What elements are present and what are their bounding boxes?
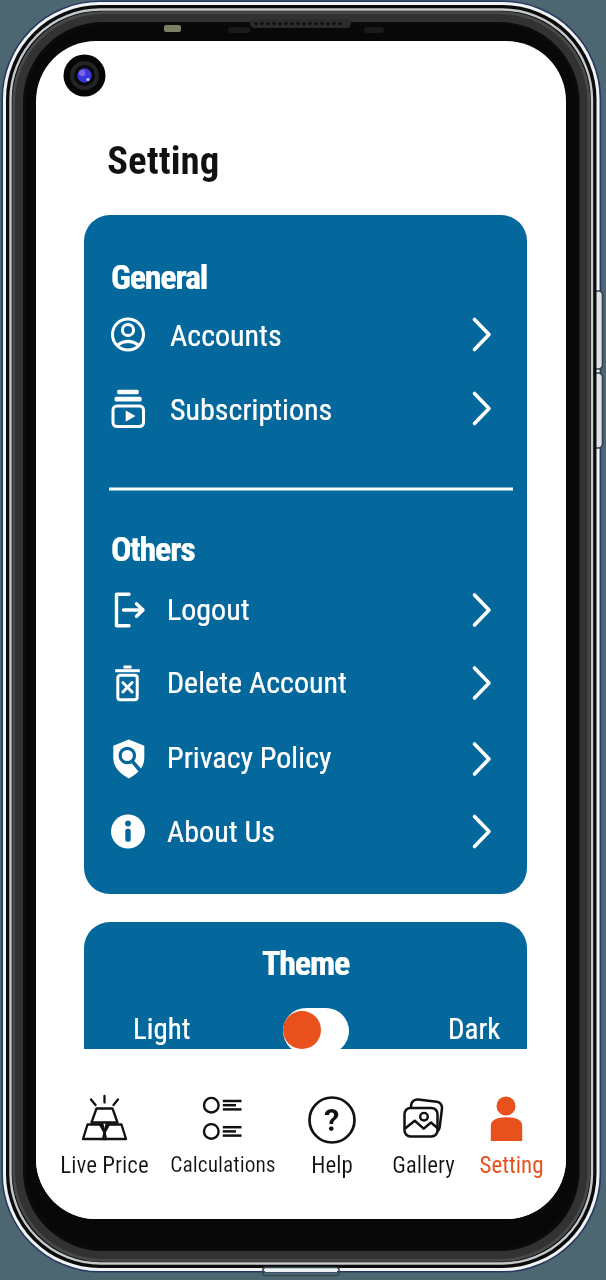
staticText: Gallery <box>392 1152 455 1179</box>
staticText: Calculations <box>170 1152 276 1177</box>
staticText: Accounts <box>170 318 282 353</box>
staticText: Light <box>133 1012 191 1046</box>
staticText: Logout <box>167 592 250 627</box>
staticText: About Us <box>167 814 275 849</box>
button[interactable] <box>100 582 502 638</box>
staticText: Privacy Policy <box>167 740 332 775</box>
staticText: Subscriptions <box>170 392 333 427</box>
button[interactable] <box>100 380 502 437</box>
staticText: General <box>111 257 208 297</box>
button[interactable] <box>100 731 502 787</box>
button[interactable] <box>282 1090 382 1185</box>
button[interactable] <box>373 1090 473 1185</box>
button[interactable] <box>100 306 502 363</box>
staticText: Dark <box>448 1012 501 1046</box>
staticText: ? <box>324 1102 340 1138</box>
staticText: Others <box>111 529 195 569</box>
button[interactable] <box>461 1090 561 1185</box>
button[interactable] <box>100 655 502 711</box>
button[interactable] <box>100 804 502 860</box>
staticText: Help <box>311 1152 353 1179</box>
button[interactable] <box>54 1090 154 1185</box>
button[interactable] <box>283 1008 349 1054</box>
staticText: Theme <box>262 943 350 983</box>
staticText: Setting <box>479 1152 544 1179</box>
staticText: Live Price <box>60 1152 149 1179</box>
staticText: Setting <box>107 138 220 184</box>
button[interactable] <box>173 1090 273 1185</box>
staticText: Delete Account <box>167 665 347 700</box>
